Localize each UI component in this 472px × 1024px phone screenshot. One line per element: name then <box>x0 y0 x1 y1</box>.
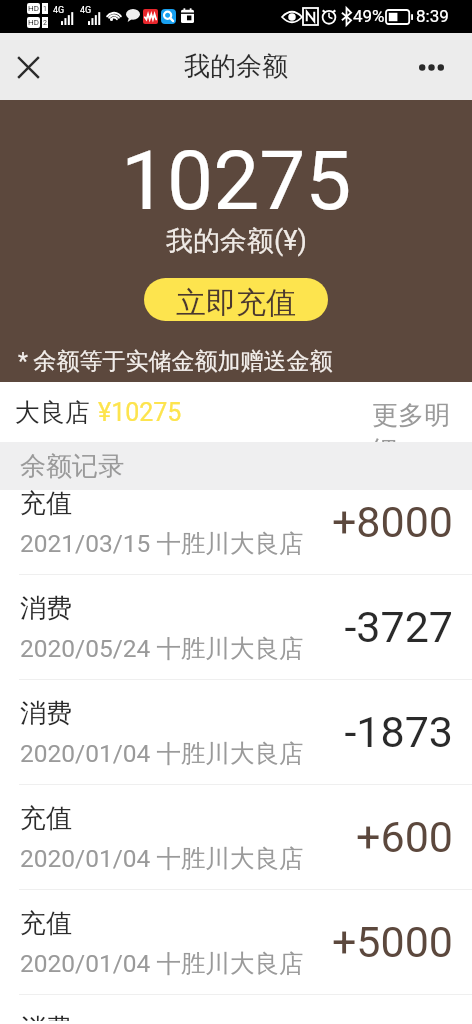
staticText: +5000 <box>331 917 453 967</box>
staticText: 2020/01/04 十胜川大良店 <box>20 948 304 979</box>
staticText: +600 <box>356 812 453 862</box>
staticText: 余额记录 <box>20 450 124 483</box>
staticText: +8000 <box>331 497 453 547</box>
staticText: 我的余额 <box>184 50 288 83</box>
staticText: 2020/01/04 十胜川大良店 <box>20 843 304 874</box>
button[interactable]: 消费 <box>0 575 472 680</box>
button[interactable]: 立即充值 <box>144 278 328 321</box>
staticText: 充值 <box>20 907 72 940</box>
staticText: 2020/01/04 十胜川大良店 <box>20 738 304 769</box>
staticText: 4G <box>53 5 65 16</box>
staticText: 消费 <box>20 1012 72 1021</box>
staticText: 我的余额(¥) <box>166 224 307 258</box>
staticText: 2021/03/15 十胜川大良店 <box>20 528 304 559</box>
button[interactable]: 充值 <box>0 890 472 995</box>
staticText: 49% <box>353 6 385 26</box>
staticText: -3727 <box>344 602 453 652</box>
staticText: 2 <box>43 19 47 27</box>
staticText: 更多明细 <box>372 399 452 459</box>
staticText: 消费 <box>20 697 72 730</box>
staticText: 大良店 <box>15 397 90 428</box>
staticText: -1873 <box>344 707 453 757</box>
staticText: 充值 <box>20 802 72 835</box>
staticText: 消费 <box>20 592 72 625</box>
staticText: 8:39 <box>416 6 449 26</box>
staticText: HD <box>28 4 39 13</box>
staticText: 1 <box>43 5 47 13</box>
button[interactable]: Close <box>0 39 56 95</box>
button[interactable]: 消费 <box>0 680 472 785</box>
staticText: HD <box>28 18 39 27</box>
staticText: * 余额等于实储金额加赠送金额 <box>18 347 333 376</box>
staticText: 4G <box>80 5 92 16</box>
staticText: ¥10275 <box>98 398 182 427</box>
staticText: 10275 <box>121 133 352 229</box>
staticText: 充值 <box>20 490 72 520</box>
button[interactable]: More options <box>403 39 459 95</box>
button[interactable]: 充值 <box>0 785 472 890</box>
button[interactable]: 充值 <box>0 490 472 575</box>
button[interactable]: 大良店 <box>0 382 472 442</box>
staticText: 立即充值 <box>176 284 296 321</box>
staticText: 2020/05/24 十胜川大良店 <box>20 633 304 664</box>
